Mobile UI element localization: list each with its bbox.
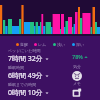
staticText: 覚醒 [20, 42, 28, 47]
staticText: 気分 [73, 64, 81, 69]
staticText: 0時間 10分 [8, 88, 43, 98]
staticText: メモ [73, 81, 82, 86]
staticText: 浅い [57, 42, 66, 47]
button[interactable]: 睡眠時間 [0, 64, 100, 81]
button[interactable]: 覚醒 [16, 42, 28, 47]
button[interactable]: メモ [66, 81, 88, 99]
button[interactable]: 睡眠までの時間 [0, 81, 100, 98]
staticText: 6時間 49分 [8, 71, 43, 81]
staticText: 睡眠時間 [8, 65, 24, 70]
staticText: 深い [76, 42, 85, 47]
button[interactable]: レム [34, 42, 47, 47]
button[interactable]: 気分 [66, 64, 88, 82]
staticText: 7時間 32分 [8, 54, 43, 64]
button[interactable]: 浅い [53, 42, 66, 47]
button[interactable]: ベッドにいた時間 [0, 47, 100, 64]
button[interactable]: 深い [72, 42, 85, 47]
staticText: レム [38, 42, 47, 47]
staticText: 睡眠までの時間 [8, 82, 37, 87]
staticText: 78% [72, 53, 83, 60]
staticText: ベッドにいた時間 [8, 48, 41, 53]
